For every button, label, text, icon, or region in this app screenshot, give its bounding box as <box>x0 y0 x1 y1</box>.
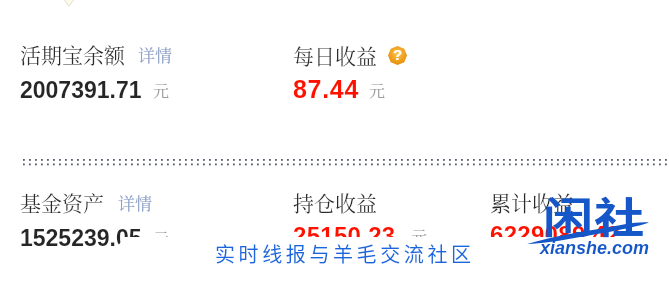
staticText: 1525239.05 <box>20 225 142 251</box>
staticText: ? <box>393 46 403 63</box>
staticText: 实时线报与羊毛交流社区 <box>215 239 475 268</box>
button[interactable]: 基金资产 <box>20 187 104 217</box>
button[interactable]: 实时线报与羊毛交流社区 <box>215 239 475 268</box>
button[interactable]: 帮助 <box>388 46 407 65</box>
button[interactable]: 累计收益 <box>490 187 574 217</box>
staticText: 25150.23 <box>293 222 396 249</box>
staticText: 元 <box>369 79 386 102</box>
staticText: 活期宝余额 <box>20 39 125 69</box>
button[interactable]: 详情 <box>138 42 172 66</box>
button[interactable]: 持仓收益 <box>293 187 377 217</box>
staticText: 元 <box>153 79 170 102</box>
staticText: 2007391.71 <box>20 77 142 103</box>
staticText: 详情 <box>118 190 152 214</box>
staticText: 元 <box>153 227 170 250</box>
button[interactable]: 详情 <box>118 190 152 214</box>
staticText: 累计收益 <box>490 187 574 217</box>
staticText: 87.44 <box>293 75 360 103</box>
staticText: xianshe.com <box>540 238 650 258</box>
staticText: 详情 <box>138 42 172 66</box>
staticText: 6229089.42 <box>490 221 620 248</box>
staticText: 持仓收益 <box>293 187 377 217</box>
staticText: 基金资产 <box>20 187 104 217</box>
staticText: 闲社 <box>543 184 646 245</box>
staticText: 每日收益 <box>293 40 377 70</box>
staticText: 元 <box>411 225 428 248</box>
button[interactable]: 活期宝余额 <box>20 39 125 69</box>
button[interactable]: 每日收益 <box>293 40 407 70</box>
button[interactable]: 闲社 <box>543 184 646 245</box>
